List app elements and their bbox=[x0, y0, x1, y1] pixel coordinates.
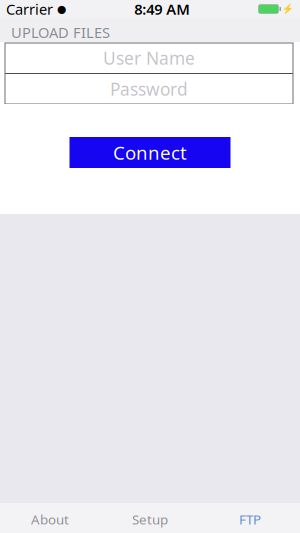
staticText: FTP bbox=[239, 510, 261, 528]
button[interactable]: About bbox=[0, 503, 100, 533]
staticText: Carrier bbox=[6, 0, 53, 19]
staticText: Password bbox=[110, 77, 188, 100]
button[interactable]: Setup bbox=[100, 503, 200, 533]
staticText: ⚡ bbox=[282, 4, 294, 14]
staticText: About bbox=[31, 510, 69, 528]
button[interactable]: Connect bbox=[69, 137, 230, 168]
staticText: Connect bbox=[113, 140, 187, 165]
staticText: UPLOAD FILES bbox=[11, 22, 110, 42]
staticText: 8:49 AM bbox=[134, 0, 190, 19]
staticText: ● bbox=[57, 3, 66, 15]
staticText: User Name bbox=[103, 46, 195, 69]
staticText: Setup bbox=[132, 510, 168, 528]
button[interactable]: FTP bbox=[200, 503, 300, 533]
